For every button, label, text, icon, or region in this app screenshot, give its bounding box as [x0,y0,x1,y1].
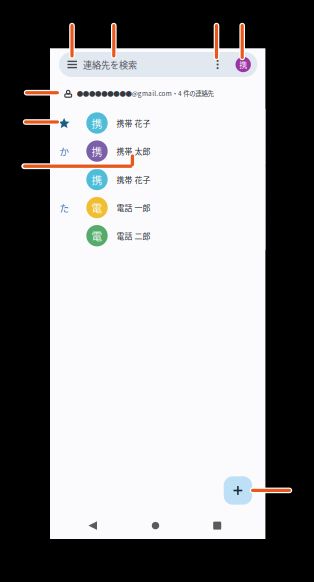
staticText: 携 [91,115,102,131]
button[interactable]: 連絡先を検索 [59,52,257,77]
staticText: 携帯 花子 [117,117,151,129]
button[interactable]: 連絡先を追加 [224,476,252,505]
staticText: 電 [91,228,102,243]
staticText: 電話 二郎 [117,230,151,241]
staticText: た [60,201,69,214]
staticText: 連絡先を検索 [83,58,137,71]
staticText: 携 [239,59,247,70]
staticText: ●●●●●●●●●@gmail.com・4 件の連絡先 [77,88,214,98]
button[interactable]: 携 [50,109,265,137]
button[interactable]: 電 [50,222,265,250]
button[interactable]: 携 [50,165,265,193]
staticText: 電 [91,200,102,215]
button[interactable]: 最近のアプリ [199,513,235,539]
staticText: 携帯 太郎 [117,145,151,157]
button[interactable]: ホーム [137,513,173,539]
button[interactable]: か [50,137,265,165]
staticText: か [60,144,69,158]
button[interactable]: 戻る [75,513,111,539]
staticText: 携帯 花子 [117,174,151,185]
staticText: 電話 一郎 [117,202,151,213]
staticText: 携 [91,172,102,187]
button[interactable]: た [50,194,265,222]
staticText: 携 [91,143,102,159]
